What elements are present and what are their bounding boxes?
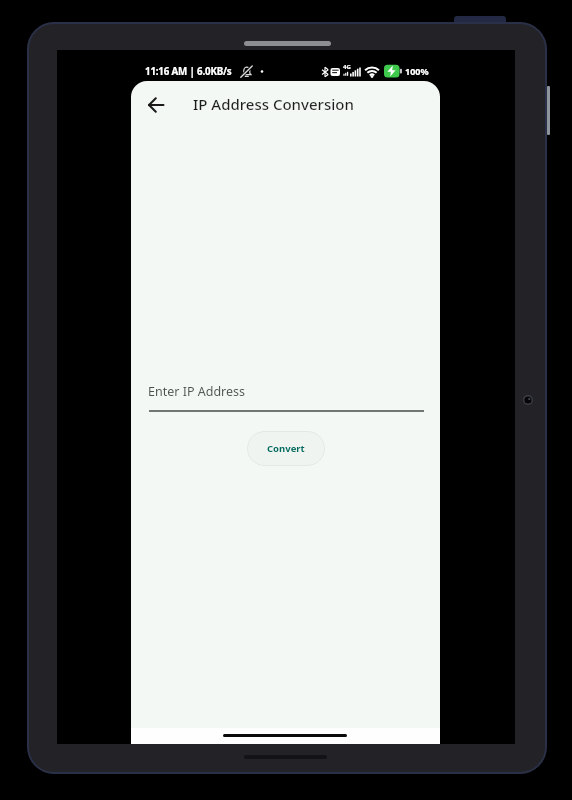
staticText: 4G [343, 63, 351, 71]
button[interactable]: Convert [247, 431, 325, 466]
staticText: 11:16 AM | 6.0KB/s [145, 65, 232, 78]
staticText: IP Address Conversion [193, 94, 354, 114]
staticText: Convert [267, 442, 305, 455]
button[interactable] [132, 81, 180, 128]
staticText: 100% [405, 65, 429, 77]
staticText: Enter IP Address [148, 383, 246, 400]
